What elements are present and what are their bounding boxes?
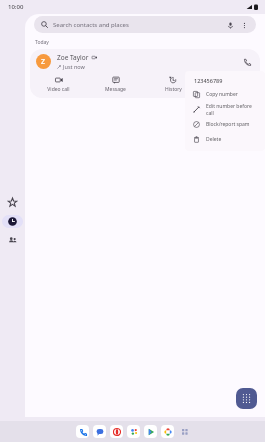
button[interactable]: Block/report spam — [185, 117, 265, 132]
button[interactable]: Play Store — [144, 425, 157, 438]
staticText: More options — [215, 86, 247, 93]
button[interactable]: Opera — [110, 425, 123, 438]
button[interactable]: Phone — [76, 425, 89, 438]
button[interactable]: Messages — [93, 425, 106, 438]
button[interactable]: Contacts — [2, 234, 23, 247]
staticText: History — [165, 86, 182, 93]
button[interactable]: Z — [30, 49, 260, 73]
button[interactable]: Voice search — [225, 20, 235, 30]
staticText: Today — [35, 39, 49, 46]
button[interactable]: More options — [202, 73, 260, 96]
button[interactable]: Message — [87, 73, 144, 96]
staticText: 123456789 — [194, 77, 223, 84]
button[interactable]: Call — [239, 54, 254, 69]
staticText: Delete — [206, 136, 222, 143]
staticText: Just now — [63, 63, 85, 70]
button[interactable]: Contacts — [127, 425, 140, 438]
staticText: Copy number — [206, 91, 238, 98]
button[interactable]: More options — [239, 20, 249, 30]
button[interactable]: Recents — [2, 215, 23, 228]
button[interactable]: All apps — [179, 426, 191, 438]
staticText: 10:00 — [8, 3, 24, 11]
button[interactable]: Video call — [30, 73, 87, 96]
button[interactable]: Favorites — [2, 196, 23, 209]
button[interactable]: History — [144, 73, 202, 96]
staticText: Edit number before call — [206, 103, 260, 117]
staticText: Search contacts and places — [53, 21, 129, 29]
button[interactable]: Edit number before call — [185, 102, 265, 117]
staticText: Block/report spam — [206, 121, 250, 128]
button[interactable]: Delete — [185, 132, 265, 147]
staticText: Message — [105, 86, 126, 93]
staticText: Video call — [47, 86, 70, 93]
button[interactable]: Copy number — [185, 87, 265, 102]
staticText: Z — [41, 57, 46, 67]
staticText: Zoe Taylor — [57, 53, 89, 62]
button[interactable]: Search contacts and places — [34, 16, 256, 33]
button[interactable]: Dialpad — [236, 388, 257, 409]
button[interactable]: Photos — [161, 425, 174, 438]
